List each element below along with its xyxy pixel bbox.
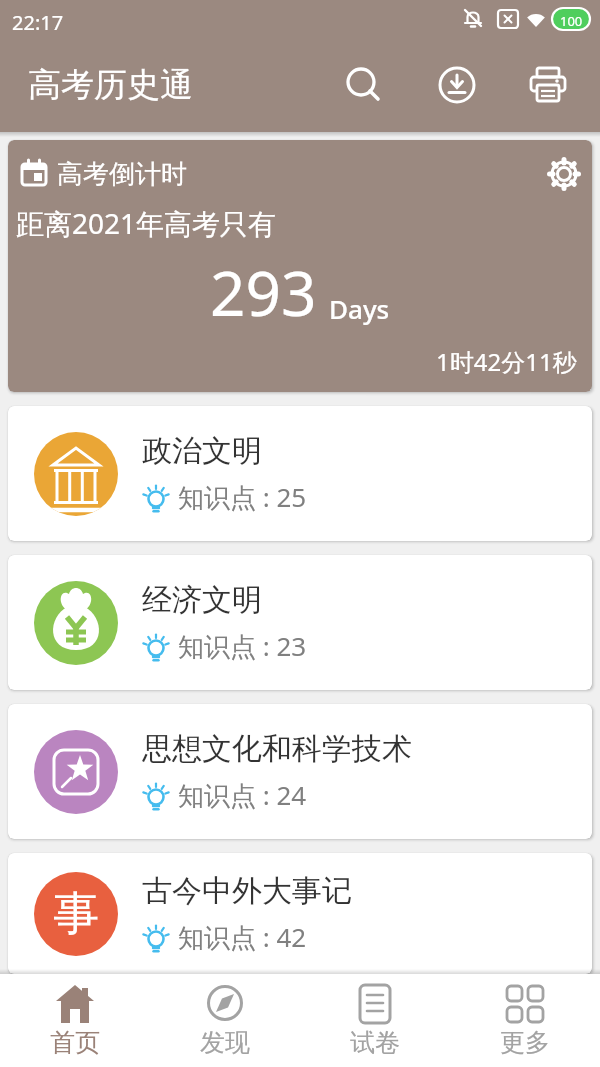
staticText: Days <box>329 291 390 326</box>
button[interactable]: 思想文化和科学技术 <box>8 704 592 839</box>
button[interactable] <box>432 60 482 110</box>
staticText: 知识点 : 24 <box>178 777 307 813</box>
staticText: 发现 <box>200 1027 250 1058</box>
staticText: 经济文明 <box>142 581 262 619</box>
staticText: 事 <box>53 885 99 943</box>
button[interactable]: 发现 <box>150 974 300 1067</box>
staticText: 古今中外大事记 <box>142 872 352 910</box>
staticText: 距离2021年高考只有 <box>16 204 277 242</box>
button[interactable]: 事 <box>8 853 592 974</box>
staticText: 知识点 : 42 <box>178 919 307 955</box>
button[interactable]: 经济文明 <box>8 555 592 690</box>
staticText: 高考历史通 <box>28 64 193 106</box>
staticText: 政治文明 <box>142 432 262 470</box>
button[interactable] <box>524 60 574 110</box>
staticText: 100 <box>560 12 583 30</box>
staticText: 知识点 : 25 <box>178 479 307 515</box>
staticText: 22:17 <box>12 9 64 36</box>
button[interactable]: 首页 <box>0 974 150 1067</box>
staticText: 1时42分11秒 <box>436 345 577 378</box>
staticText: 试卷 <box>350 1027 400 1058</box>
button[interactable]: 试卷 <box>300 974 450 1067</box>
button[interactable] <box>338 60 388 110</box>
staticText: 293 <box>210 250 317 334</box>
staticText: 高考倒计时 <box>57 158 187 191</box>
staticText: 知识点 : 23 <box>178 628 307 664</box>
staticText: 首页 <box>50 1027 100 1058</box>
staticText: 更多 <box>500 1027 550 1058</box>
button[interactable]: 更多 <box>450 974 600 1067</box>
button[interactable]: 政治文明 <box>8 406 592 541</box>
button[interactable]: 高考倒计时 <box>8 140 592 392</box>
button[interactable] <box>542 153 586 197</box>
staticText: 思想文化和科学技术 <box>142 730 412 768</box>
